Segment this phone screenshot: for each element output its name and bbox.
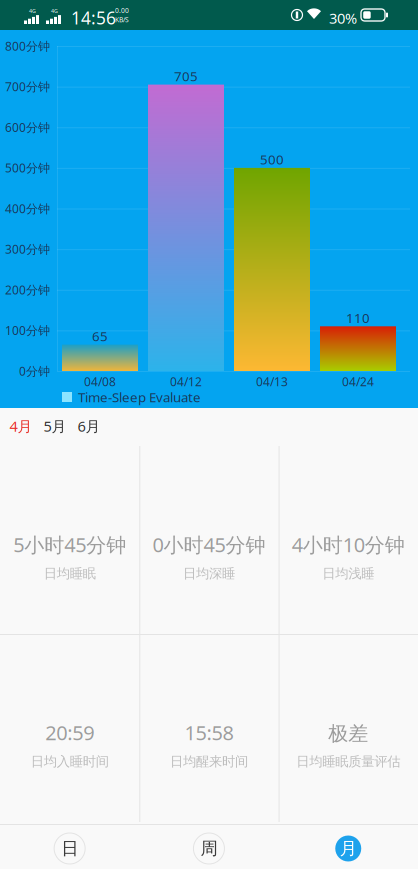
staticText: 4月 (9, 416, 32, 436)
button[interactable]: 5月 (38, 416, 72, 436)
staticText: 04/12 (170, 373, 202, 390)
staticText: 65 (92, 327, 108, 345)
staticText: 30% (329, 8, 357, 28)
button[interactable]: 0小时45分钟 (139, 446, 279, 634)
button[interactable]: 5小时45分钟 (0, 446, 139, 634)
staticText: 4G (51, 7, 58, 15)
staticText: 日均深睡 (183, 565, 235, 582)
staticText: 705 (174, 67, 198, 85)
staticText: 800分钟 (5, 38, 50, 54)
staticText: 日均浅睡 (322, 565, 374, 582)
staticText: 110 (346, 309, 370, 327)
staticText: 4G (29, 7, 36, 15)
staticText: 0小时45分钟 (152, 531, 265, 558)
staticText: 4小时10分钟 (292, 531, 405, 558)
button[interactable]: Month (279, 824, 418, 865)
staticText: 700分钟 (5, 78, 50, 95)
staticText: 极差 (328, 721, 368, 746)
staticText: 20:59 (45, 719, 94, 746)
staticText: 500分钟 (5, 160, 50, 176)
staticText: KB/S (115, 15, 129, 24)
button[interactable]: Week (139, 824, 279, 865)
button[interactable]: 15:58 (139, 634, 279, 822)
button[interactable]: 极差 (279, 634, 418, 822)
staticText: 15:58 (184, 719, 233, 746)
staticText: 0.00 (115, 6, 129, 15)
button[interactable]: 4月 (4, 416, 38, 436)
staticText: 0分钟 (19, 363, 50, 379)
staticText: Time-Sleep Evaluate (78, 388, 201, 406)
staticText: 04/08 (84, 373, 116, 390)
button[interactable]: 4小时10分钟 (279, 446, 418, 634)
staticText: 200分钟 (5, 282, 50, 298)
staticText: 500 (260, 150, 284, 168)
staticText: 周 (200, 838, 217, 859)
staticText: 100分钟 (5, 322, 50, 338)
button[interactable]: 6月 (72, 416, 106, 436)
button[interactable]: 20:59 (0, 634, 139, 822)
staticText: 14:56 (71, 6, 116, 30)
staticText: 5月 (43, 416, 66, 436)
staticText: 400分钟 (5, 200, 50, 217)
button[interactable]: Day (0, 824, 139, 865)
staticText: 04/13 (256, 373, 288, 390)
staticText: 日均睡眠质量评估 (296, 753, 400, 770)
staticText: 日均睡眠 (44, 565, 96, 582)
staticText: 日均入睡时间 (31, 753, 109, 770)
staticText: 300分钟 (5, 241, 50, 257)
staticText: 5小时45分钟 (13, 531, 126, 558)
staticText: 600分钟 (5, 119, 50, 135)
staticText: 日 (61, 838, 78, 859)
staticText: 日均醒来时间 (170, 753, 248, 770)
staticText: 04/24 (342, 373, 374, 390)
staticText: 6月 (77, 416, 100, 436)
staticText: 月 (340, 838, 357, 859)
